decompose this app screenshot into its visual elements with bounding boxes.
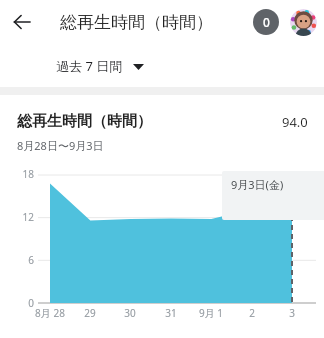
- staticText: 2: [230, 306, 274, 320]
- staticText: 30: [108, 306, 152, 320]
- button[interactable]: アカウント: [290, 9, 317, 36]
- staticText: 総再生時間（時間）: [17, 112, 152, 131]
- staticText: 9月 1: [189, 306, 233, 320]
- staticText: 0: [263, 14, 270, 30]
- staticText: 9月3日(金): [231, 177, 284, 192]
- staticText: 31: [149, 306, 193, 320]
- staticText: 6: [4, 253, 34, 267]
- staticText: 8月28日〜9月3日: [17, 138, 104, 153]
- button[interactable]: 0: [253, 9, 279, 35]
- staticText: 12: [4, 210, 34, 224]
- button[interactable]: 戻る: [0, 0, 44, 44]
- staticText: 8月 28: [28, 306, 72, 320]
- staticText: 過去 7 日間: [56, 57, 123, 75]
- staticText: 3: [270, 306, 314, 320]
- staticText: 18: [4, 167, 34, 181]
- staticText: 0: [4, 296, 34, 310]
- staticText: 総再生時間（時間）: [60, 12, 213, 33]
- staticText: 94.0: [282, 113, 308, 131]
- button[interactable]: 過去 7 日間: [56, 57, 144, 75]
- staticText: 29: [68, 306, 112, 320]
